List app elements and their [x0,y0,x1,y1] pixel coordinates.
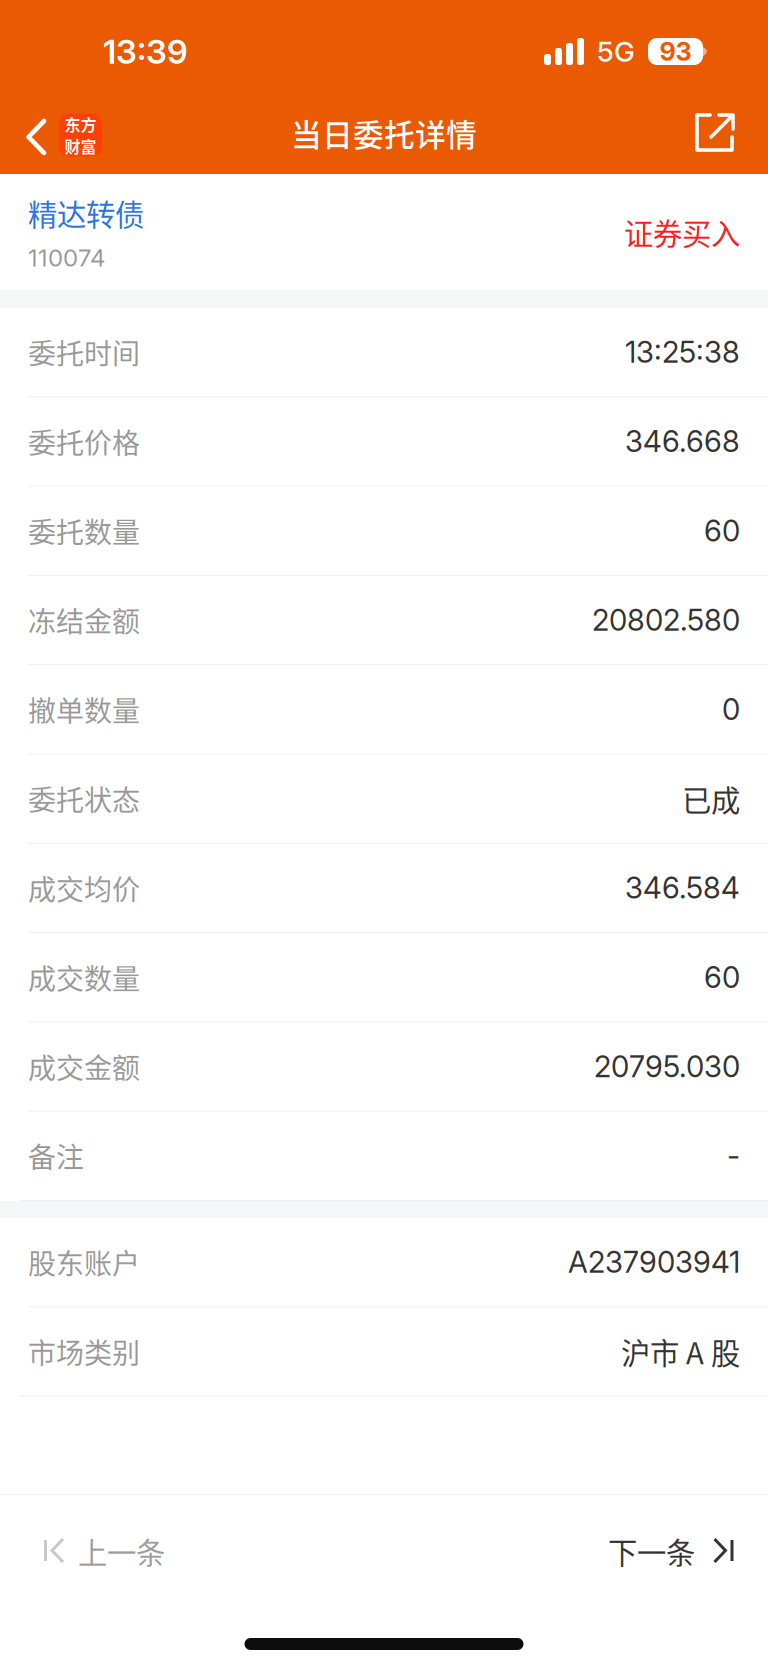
staticText: 93 [659,36,691,67]
staticText: 撤单数量 [28,689,140,730]
staticText: 市场类别 [28,1331,140,1372]
staticText: 346.584 [625,870,740,906]
button[interactable]: 下一条 [578,1495,768,1607]
staticText: 成交均价 [28,868,140,908]
staticText: 下一条 [608,1530,695,1572]
staticText: A237903941 [568,1244,740,1280]
button[interactable]: Share [675,92,768,174]
staticText: 委托数量 [28,510,140,551]
staticText: 成交金额 [28,1046,140,1087]
staticText: 委托状态 [28,778,140,819]
staticText: - [727,1138,740,1174]
staticText: 上一条 [78,1530,165,1572]
staticText: 0 [722,692,740,727]
staticText: 证券买入 [624,211,740,253]
staticText: 当日委托详情 [291,111,477,155]
staticText: 备注 [28,1136,84,1176]
staticText: 60 [704,959,740,995]
staticText: 精达转债 [28,192,144,234]
staticText: 委托价格 [28,421,140,462]
staticText: 冻结金额 [28,600,140,640]
staticText: 已成 [682,777,740,820]
staticText: 成交数量 [28,957,140,997]
staticText: 财富 [64,134,96,158]
staticText: 60 [704,513,740,548]
button[interactable]: 东方 [0,92,118,174]
staticText: 20802.580 [592,602,740,638]
staticText: 沪市 A 股 [621,1330,740,1373]
staticText: 13:39 [103,31,188,72]
staticText: 委托时间 [28,332,140,372]
staticText: 东方 [64,112,96,135]
staticText: 346.668 [625,424,740,459]
staticText: 13:25:38 [625,334,740,370]
staticText: 110074 [28,243,105,272]
staticText: 5G [597,35,635,68]
staticText: 20795.030 [594,1049,740,1084]
button[interactable]: 上一条 [0,1495,195,1607]
staticText: 股东账户 [28,1242,140,1282]
